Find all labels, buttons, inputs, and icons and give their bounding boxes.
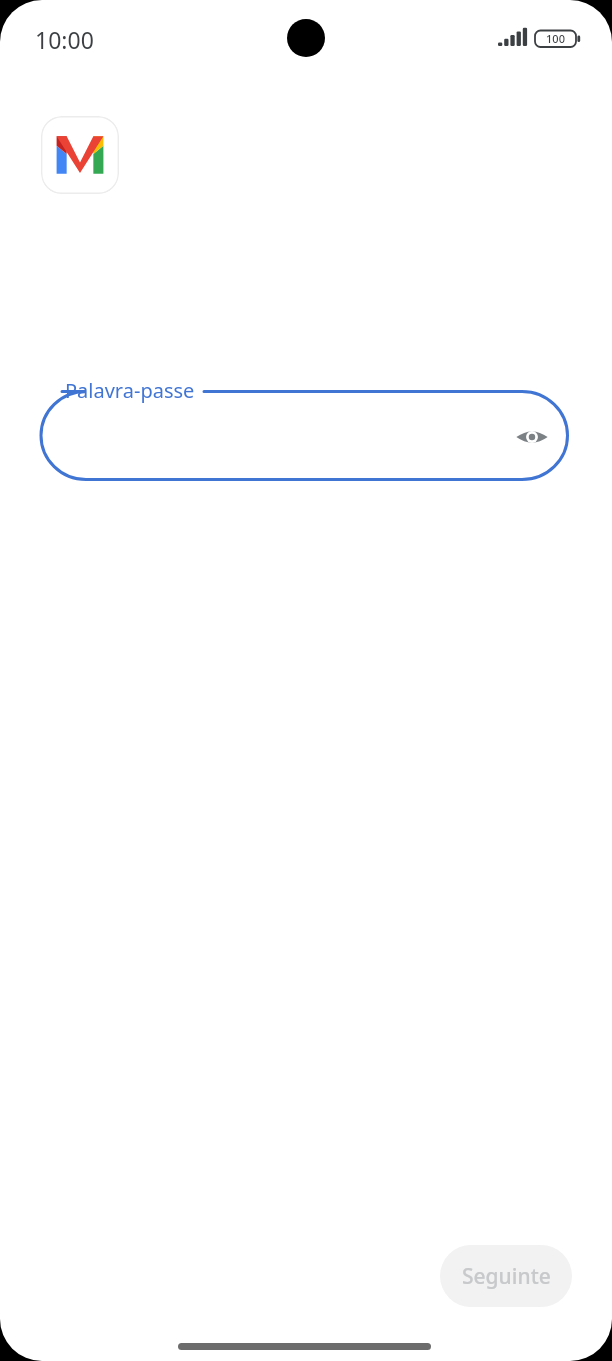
button[interactable]: Mostrar palavra-passe xyxy=(509,414,555,460)
button[interactable]: Palavra-passe xyxy=(40,376,569,483)
staticText: 10:00 xyxy=(35,24,94,55)
button[interactable]: Seguinte xyxy=(440,1245,572,1307)
staticText: 100 xyxy=(546,31,565,46)
staticText: Palavra-passe xyxy=(65,377,195,404)
staticText: Seguinte xyxy=(462,1262,551,1291)
button[interactable]: Gmail xyxy=(41,116,119,194)
